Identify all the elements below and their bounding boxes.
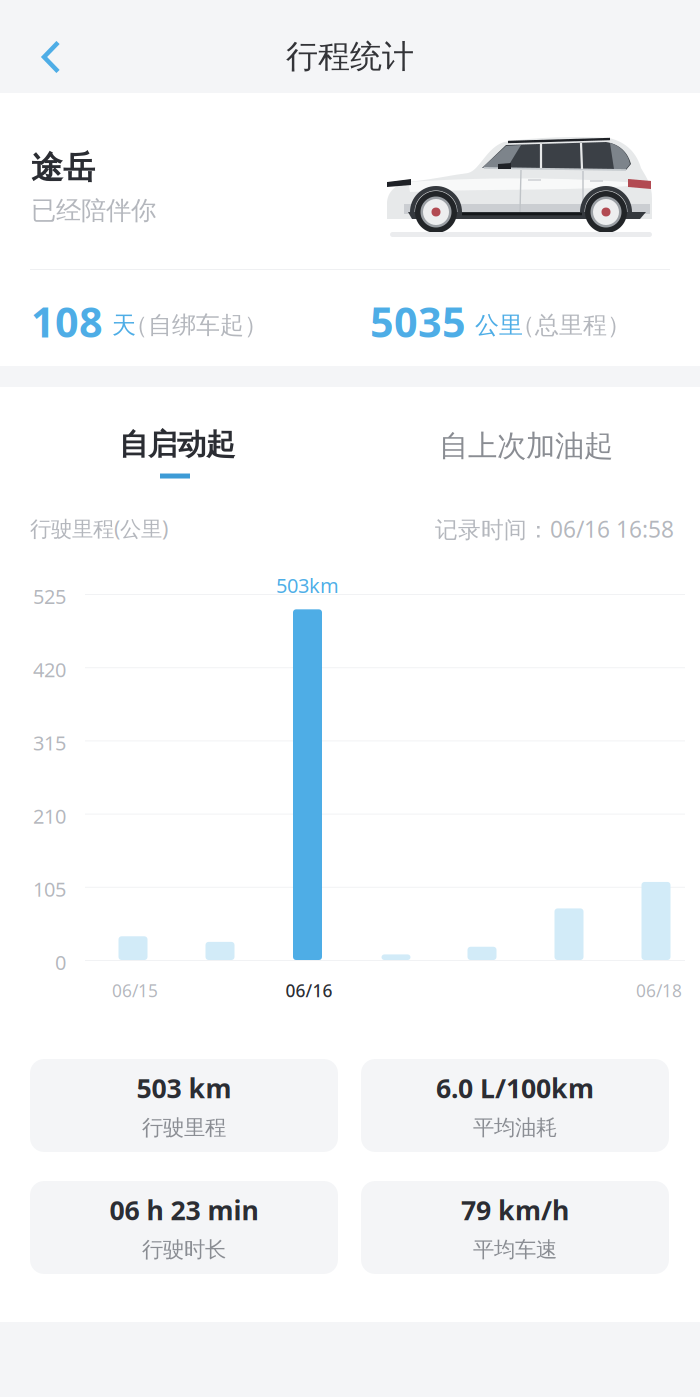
button[interactable]: 6.0 L/100km [361,1059,669,1152]
button[interactable]: 06 h 23 min [30,1181,338,1274]
staticText: 行驶时长 [142,1237,226,1263]
staticText: 503 km [136,1070,231,1106]
staticText: （总里程） [511,310,631,340]
staticText: 行程统计 [286,37,414,76]
staticText: 平均车速 [473,1237,557,1263]
button[interactable]: Back [19,25,83,89]
staticText: 自上次加油起 [439,428,613,464]
staticText: 途岳 [31,148,95,187]
staticText: 06/15 [112,979,158,1002]
staticText: 210 [33,803,66,829]
staticText: 105 [33,876,66,902]
staticText: 420 [33,656,66,683]
staticText: 行驶里程(公里) [30,514,168,542]
staticText: 天 [112,310,136,340]
button[interactable]: 79 km/h [361,1181,669,1274]
staticText: 记录时间：06/16 16:58 [435,514,674,544]
staticText: 108 [31,294,103,349]
staticText: 525 [33,583,66,610]
staticText: （自绑车起） [124,310,268,340]
staticText: 0 [55,949,66,976]
button[interactable]: 自上次加油起 [351,428,700,492]
staticText: 503km [276,572,339,599]
staticText: 79 km/h [461,1192,569,1228]
staticText: 6.0 L/100km [436,1070,594,1106]
staticText: 已经陪伴你 [31,195,156,226]
staticText: 5035 [370,294,466,349]
staticText: 06/16 [285,979,332,1002]
staticText: 行驶里程 [142,1115,226,1141]
staticText: 06/18 [636,979,682,1002]
button[interactable]: 自启动起 [2,415,352,479]
staticText: 公里 [475,310,523,340]
staticText: 平均油耗 [473,1115,557,1141]
button[interactable]: 503 km [30,1059,338,1152]
staticText: 06 h 23 min [109,1192,258,1228]
staticText: 315 [33,729,66,756]
staticText: 自启动起 [119,426,235,462]
